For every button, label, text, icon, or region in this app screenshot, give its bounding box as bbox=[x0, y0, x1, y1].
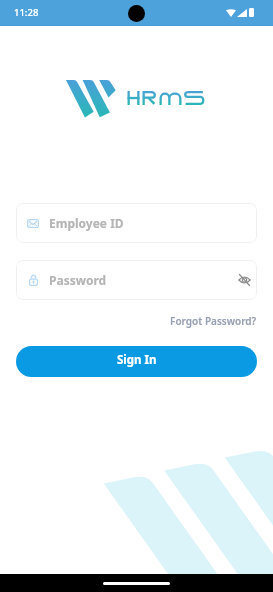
staticText: Sign In bbox=[117, 352, 157, 368]
staticText: Employee ID bbox=[49, 215, 124, 231]
button[interactable]: Forgot Password? bbox=[170, 314, 257, 328]
button[interactable]: Employee ID bbox=[16, 203, 257, 243]
staticText: Password bbox=[49, 272, 107, 288]
button[interactable]: Password bbox=[16, 260, 257, 300]
button[interactable]: Show password bbox=[236, 270, 253, 290]
button[interactable]: Sign In bbox=[16, 346, 257, 377]
staticText: Forgot Password? bbox=[170, 314, 257, 328]
staticText: 11:28 bbox=[14, 6, 39, 19]
